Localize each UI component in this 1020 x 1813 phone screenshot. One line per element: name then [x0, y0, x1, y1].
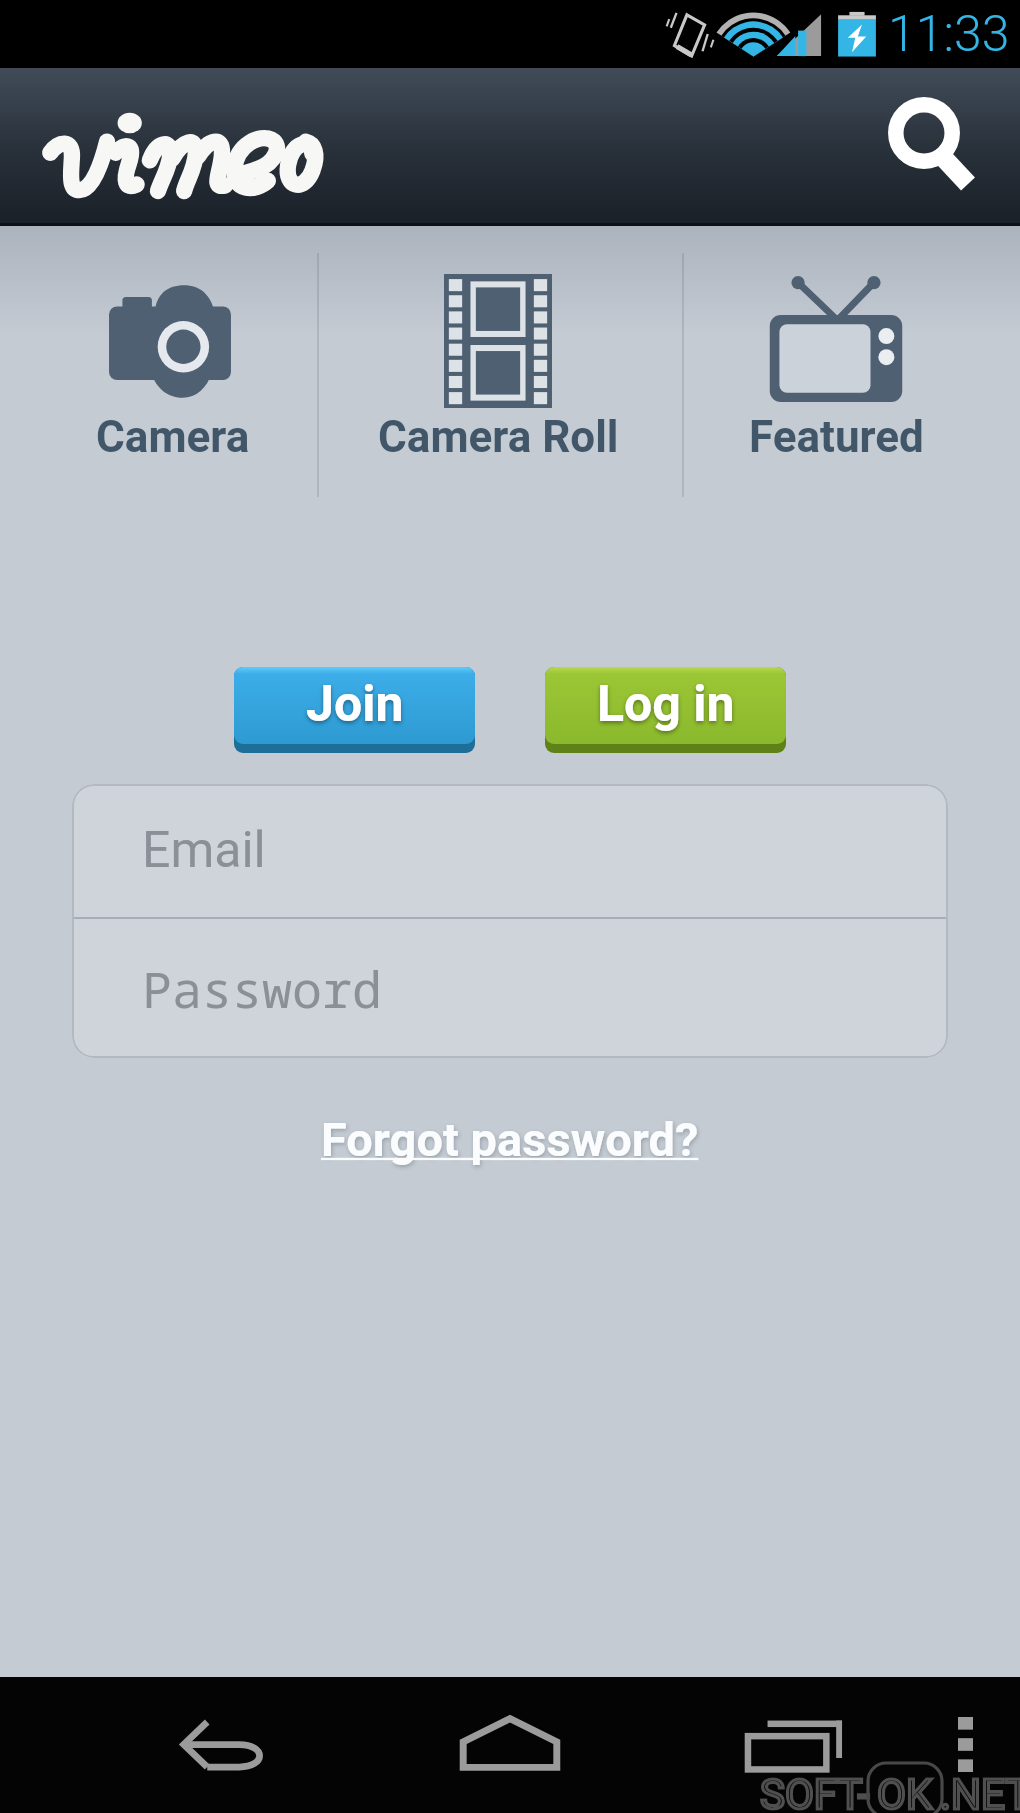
staticText: .NET — [940, 1770, 1020, 1813]
button[interactable]: Forgot password? — [307, 1104, 713, 1175]
staticText: Email — [142, 821, 266, 880]
button[interactable]: Join — [234, 667, 475, 753]
staticText: Forgot password? — [321, 1112, 699, 1167]
staticText: Featured — [749, 411, 924, 463]
staticText: Join — [306, 675, 404, 734]
button[interactable]: Recent apps — [720, 1677, 870, 1813]
staticText: SOFT- — [760, 1770, 870, 1813]
button[interactable]: Camera Roll — [319, 226, 682, 486]
button[interactable]: More options — [920, 1677, 1010, 1813]
staticText: Log in — [597, 675, 735, 734]
button[interactable]: Featured — [684, 226, 1020, 486]
button[interactable]: Back — [156, 1677, 296, 1813]
button[interactable]: Email — [72, 784, 948, 917]
button[interactable]: Search — [860, 68, 1020, 226]
button[interactable]: Camera — [0, 226, 317, 486]
staticText: Camera Roll — [378, 411, 619, 463]
staticText: Password — [142, 955, 382, 1023]
staticText: OK — [877, 1770, 933, 1813]
button[interactable]: Home — [440, 1677, 580, 1813]
staticText: Camera — [96, 411, 250, 463]
button[interactable]: Password — [72, 919, 948, 1058]
staticText: 11:33 — [888, 5, 1010, 64]
button[interactable]: Log in — [545, 667, 786, 753]
